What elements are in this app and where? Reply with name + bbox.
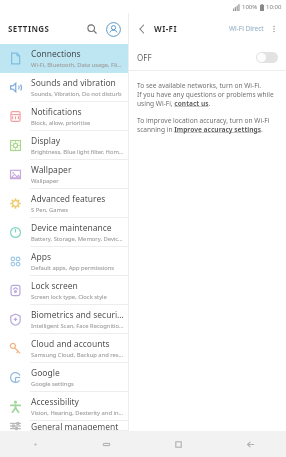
staticText: Google xyxy=(31,367,60,379)
staticText: Wi-Fi, Bluetooth, Data usage, Flight… xyxy=(31,61,124,69)
staticText: Intelligent Scan, Face Recognition,… xyxy=(31,322,124,330)
staticText: Biometrics and security xyxy=(31,309,124,321)
button[interactable]: Display xyxy=(0,131,128,160)
staticText: Default apps, App permissions xyxy=(31,264,115,272)
staticText: To improve location accuracy, turn on Wi… xyxy=(137,116,278,134)
staticText: To see available networks, turn on Wi-Fi… xyxy=(137,81,262,90)
staticText: Cloud and accounts xyxy=(31,338,110,350)
staticText: S Pen, Games xyxy=(31,206,69,214)
staticText: Advanced features xyxy=(31,193,106,205)
button[interactable]: Lock screen xyxy=(0,276,128,305)
staticText: Block, allow, prioritise xyxy=(31,119,91,127)
staticText: General management xyxy=(31,421,119,431)
button[interactable]: Accessibility xyxy=(0,392,128,421)
button[interactable]: Connections xyxy=(0,44,128,73)
staticText: Lock screen xyxy=(31,280,78,292)
button[interactable]: Wallpaper xyxy=(0,160,128,189)
staticText: Vision, Hearing, Dexterity and intera… xyxy=(31,409,124,417)
staticText: Google settings xyxy=(31,380,74,388)
staticText: Notifications xyxy=(31,106,82,118)
button[interactable]: OFF xyxy=(129,44,286,70)
button[interactable]: Back xyxy=(133,20,151,38)
button[interactable]: Device maintenance xyxy=(0,218,128,247)
staticText: Wallpaper xyxy=(31,164,72,176)
staticText: 10:00 xyxy=(266,3,282,11)
button[interactable]: Google xyxy=(0,363,128,392)
staticText: Apps xyxy=(31,251,51,263)
staticText: Sounds, Vibration, Do not disturb xyxy=(31,90,122,98)
button[interactable]: Search xyxy=(82,19,102,39)
button[interactable]: Sounds and vibration xyxy=(0,73,128,102)
staticText: Wallpaper xyxy=(31,177,59,185)
button[interactable]: Switch apps xyxy=(71,431,142,457)
button[interactable]: Wi-Fi Direct xyxy=(227,20,266,37)
button[interactable]: Back xyxy=(214,431,286,457)
button[interactable]: Notifications xyxy=(0,102,128,131)
button[interactable]: Recents xyxy=(142,431,214,457)
staticText: Screen lock type, Clock style xyxy=(31,293,107,301)
staticText: Brightness, Blue light filter, Home sc… xyxy=(31,148,124,156)
staticText: SETTINGS xyxy=(8,23,50,34)
staticText: WI-FI xyxy=(154,23,177,34)
staticText: Wi-Fi Direct xyxy=(229,24,264,33)
staticText: 100% xyxy=(242,3,258,11)
button[interactable]: Biometrics and security xyxy=(0,305,128,334)
staticText: Connections xyxy=(31,48,81,60)
button[interactable]: Account xyxy=(102,18,124,40)
button[interactable]: General management xyxy=(0,421,128,431)
staticText: OFF xyxy=(137,52,152,63)
button[interactable]: Cloud and accounts xyxy=(0,334,128,363)
staticText: If you have any questions or problems wh… xyxy=(137,90,278,108)
staticText: Accessibility xyxy=(31,396,79,408)
staticText: Battery, Storage, Memory, Device se… xyxy=(31,235,124,243)
button[interactable]: Apps xyxy=(0,247,128,276)
button[interactable]: More options xyxy=(266,21,282,37)
staticText: Sounds and vibration xyxy=(31,77,116,89)
button[interactable]: Advanced features xyxy=(0,189,128,218)
staticText: Display xyxy=(31,135,60,147)
staticText: Samsung Cloud, Backup and restor… xyxy=(31,351,124,359)
staticText: Device maintenance xyxy=(31,222,112,234)
